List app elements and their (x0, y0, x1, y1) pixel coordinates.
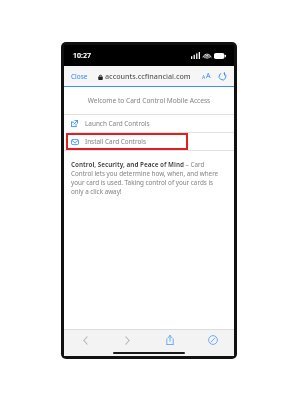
button[interactable]: Back (64, 330, 106, 350)
button[interactable]: Text size (202, 71, 211, 81)
staticText: accounts.ccfinancial.com (105, 71, 191, 81)
staticText: Welcome to Card Control Mobile Access (74, 96, 224, 105)
button[interactable]: Forward (106, 330, 148, 350)
button[interactable]: Share (148, 330, 191, 350)
button[interactable]: Install Card Controls (64, 133, 234, 150)
button[interactable]: Tabs (191, 330, 234, 350)
staticText: A (202, 74, 206, 81)
button[interactable]: Reload (218, 72, 227, 81)
staticText: Launch Card Controls (85, 119, 150, 128)
staticText: Control, Security, and Peace of Mind – C… (71, 160, 227, 196)
button[interactable]: Close (71, 72, 88, 81)
button[interactable]: Launch Card Controls (64, 115, 234, 132)
staticText: 10:27 (73, 51, 91, 61)
staticText: Install Card Controls (85, 137, 147, 146)
staticText: A (206, 71, 211, 81)
